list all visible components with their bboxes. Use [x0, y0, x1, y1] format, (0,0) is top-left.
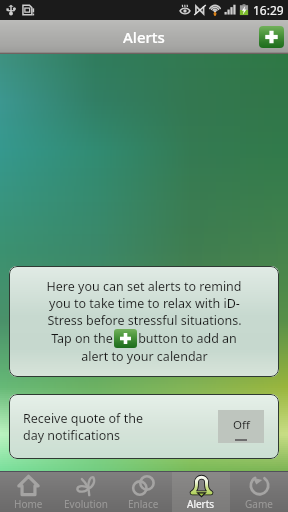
staticText: Enlace: [128, 497, 159, 511]
staticText: Alerts: [123, 27, 165, 47]
staticText: Evolution: [64, 497, 108, 511]
button[interactable]: Receive quote of the: [9, 394, 279, 459]
staticText: Receive quote of the: [23, 410, 143, 427]
button[interactable]: Add alert: [259, 26, 284, 48]
button[interactable]: Home: [0, 472, 57, 512]
staticText: Home: [14, 497, 43, 511]
staticText: day notifications: [23, 427, 120, 444]
button[interactable]: Evolution: [57, 472, 114, 512]
staticText: you to take time to relax with iD-: [49, 295, 240, 312]
staticText: button to add an: [138, 330, 237, 347]
staticText: Stress before stressful situations.: [47, 312, 242, 329]
button[interactable]: Off: [218, 410, 264, 443]
staticText: Off: [233, 417, 250, 433]
staticText: Here you can set alerts to remind: [46, 278, 242, 295]
staticText: Alerts: [187, 497, 215, 511]
button[interactable]: Enlace: [114, 472, 172, 512]
staticText: alert to your calendar: [81, 348, 208, 365]
button[interactable]: Alerts: [172, 472, 230, 512]
button[interactable]: Game: [230, 472, 288, 512]
staticText: Game: [245, 497, 273, 511]
staticText: Tap on the: [51, 330, 113, 347]
staticText: 16:29: [253, 2, 284, 18]
button[interactable]: Here you can set alerts to remind: [9, 266, 279, 377]
